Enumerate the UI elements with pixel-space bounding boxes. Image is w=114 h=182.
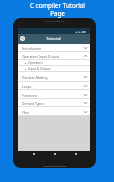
staticText: Page [50, 9, 65, 17]
staticText: Input & Output [28, 67, 51, 71]
button[interactable]: Introduction [18, 44, 90, 52]
staticText: Introduction [22, 46, 42, 50]
button[interactable]: Operators Input Output [18, 52, 90, 60]
staticText: C compiler Tutorial [30, 1, 85, 9]
staticText: Loops [22, 84, 32, 88]
staticText: Decision Making [22, 75, 48, 79]
staticText: Tutorial [46, 36, 61, 42]
button[interactable]: Input & Output [18, 66, 90, 72]
staticText: Derived Types [22, 101, 44, 105]
staticText: Files [22, 110, 29, 114]
button[interactable]: Operators [18, 60, 90, 66]
button[interactable]: Files [18, 107, 90, 116]
button[interactable]: Loops [18, 82, 90, 90]
staticText: Functions [22, 93, 38, 97]
button[interactable]: Derived Types [18, 99, 90, 107]
staticText: Operators Input Output [22, 54, 59, 58]
staticText: Operators [28, 61, 43, 65]
button[interactable]: Functions [18, 90, 90, 99]
button[interactable]: Decision Making [18, 72, 90, 82]
button[interactable]: Back [20, 36, 25, 41]
